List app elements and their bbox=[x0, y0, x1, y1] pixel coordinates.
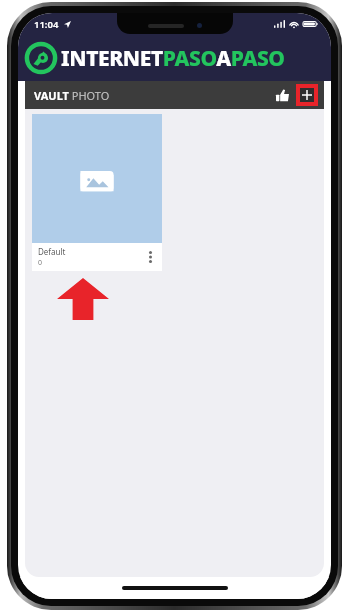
staticText: 11:04 bbox=[34, 18, 59, 31]
staticText: 0 bbox=[38, 258, 43, 268]
staticText: VAULT PHOTO bbox=[34, 88, 110, 103]
button[interactable]: Rate app bbox=[270, 83, 294, 107]
button[interactable]: More options bbox=[141, 244, 159, 270]
button[interactable]: Add album bbox=[300, 88, 314, 102]
staticText: Default bbox=[38, 246, 66, 257]
staticText: INTERNETPASOAPASO bbox=[61, 44, 285, 73]
button[interactable]: Default bbox=[32, 114, 162, 271]
